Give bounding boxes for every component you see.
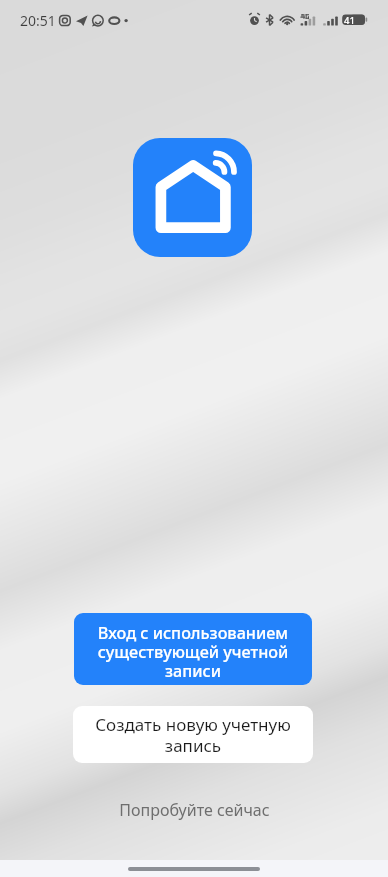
- other: Smart Life app icon: [133, 138, 252, 257]
- staticText: Попробуйте сейчас: [119, 799, 270, 821]
- staticText: 41: [344, 14, 355, 27]
- staticText: Создать новую учетную запись: [93, 713, 293, 757]
- staticText: Вход с использованием существующей учетн…: [90, 622, 296, 682]
- button[interactable]: Попробуйте сейчас: [104, 796, 284, 824]
- button[interactable]: Вход с использованием существующей учетн…: [74, 613, 312, 685]
- staticText: 20:51: [20, 11, 56, 30]
- button[interactable]: Создать новую учетную запись: [73, 706, 313, 763]
